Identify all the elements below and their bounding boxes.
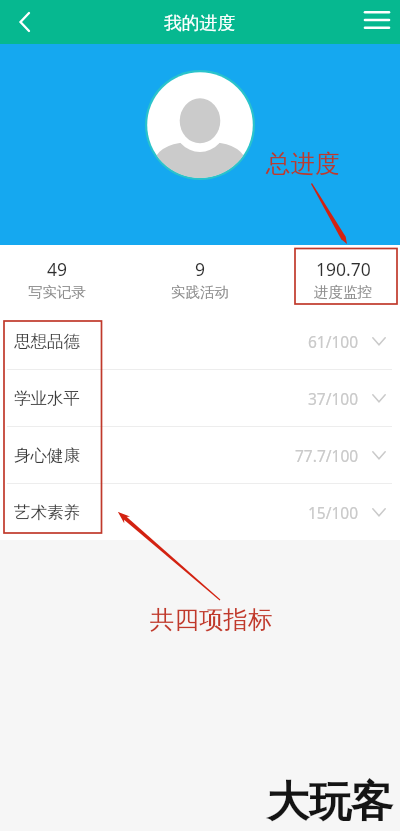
staticText: 我的进度: [164, 12, 236, 34]
staticText: 77.7/100: [295, 445, 359, 466]
staticText: 9: [195, 257, 206, 281]
staticText: 学业水平: [14, 388, 80, 409]
staticText: 37/100: [308, 388, 359, 409]
staticText: 大玩客: [267, 776, 393, 829]
staticText: 61/100: [308, 331, 359, 352]
button[interactable]: 思想品德: [0, 313, 400, 369]
staticText: 共四项指标: [150, 604, 273, 635]
button[interactable]: Menu: [354, 0, 400, 44]
staticText: 思想品德: [14, 331, 80, 352]
staticText: 进度监控: [314, 283, 372, 301]
staticText: 15/100: [308, 502, 359, 523]
staticText: 身心健康: [14, 445, 80, 466]
button[interactable]: 49: [26, 245, 88, 313]
button[interactable]: Back: [0, 0, 48, 44]
button[interactable]: 190.70: [312, 245, 374, 313]
button[interactable]: 学业水平: [0, 370, 400, 426]
button[interactable]: 身心健康: [0, 427, 400, 483]
staticText: 49: [47, 257, 68, 281]
button[interactable]: 艺术素养: [0, 484, 400, 540]
staticText: 190.70: [316, 257, 371, 281]
staticText: 艺术素养: [14, 502, 80, 523]
staticText: 实践活动: [171, 283, 229, 301]
staticText: 总进度: [266, 148, 340, 179]
button[interactable]: 9: [169, 245, 231, 313]
staticText: 写实记录: [28, 283, 86, 301]
